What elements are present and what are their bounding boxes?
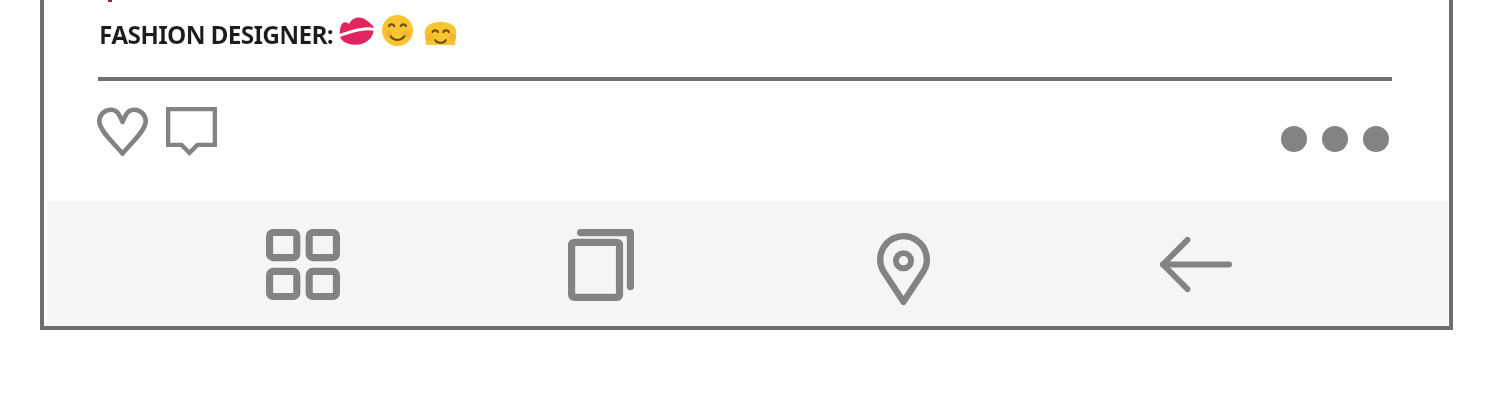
button[interactable]: Grid view	[218, 202, 388, 327]
button[interactable]: Location	[818, 202, 988, 327]
button[interactable]: Comment	[151, 92, 232, 171]
button[interactable]: Like	[82, 92, 163, 171]
button[interactable]: More options	[1268, 105, 1402, 173]
button[interactable]: Back	[1111, 202, 1281, 327]
staticText: FASHION DESIGNER:	[99, 18, 333, 51]
button[interactable]: Pages	[516, 202, 686, 327]
